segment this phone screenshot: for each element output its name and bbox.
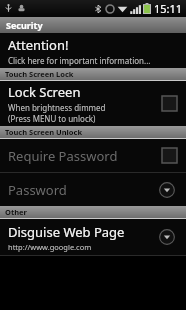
button[interactable]: Toggle checkbox <box>161 95 178 112</box>
staticText: Require Password <box>8 147 161 165</box>
staticText: Password <box>8 181 158 199</box>
button[interactable]: Lock Screen <box>0 81 186 126</box>
staticText: Security <box>6 19 43 31</box>
button[interactable]: Disguise Web Page <box>0 219 186 255</box>
staticText: http://www.google.com <box>8 242 92 252</box>
button[interactable]: Open dropdown <box>158 228 176 246</box>
staticText: 15:11 <box>154 1 183 16</box>
staticText: Click here for important information... <box>8 55 151 66</box>
staticText: Disguise Web Page <box>8 223 125 241</box>
staticText: (Press MENU to unlock) <box>8 113 96 124</box>
button[interactable]: Open dropdown <box>158 181 176 199</box>
button[interactable]: Toggle checkbox <box>161 147 178 164</box>
staticText: Attention! <box>8 36 69 54</box>
button[interactable]: Attention! <box>0 33 186 68</box>
staticText: Other <box>5 207 27 217</box>
staticText: Touch Screen Lock <box>5 69 74 79</box>
staticText: Touch Screen Unlock <box>5 127 83 137</box>
staticText: When brightness dimmed <box>8 102 106 113</box>
button[interactable]: Password <box>0 173 186 206</box>
staticText: Lock Screen <box>8 83 81 101</box>
button[interactable]: Require Password <box>0 139 186 172</box>
